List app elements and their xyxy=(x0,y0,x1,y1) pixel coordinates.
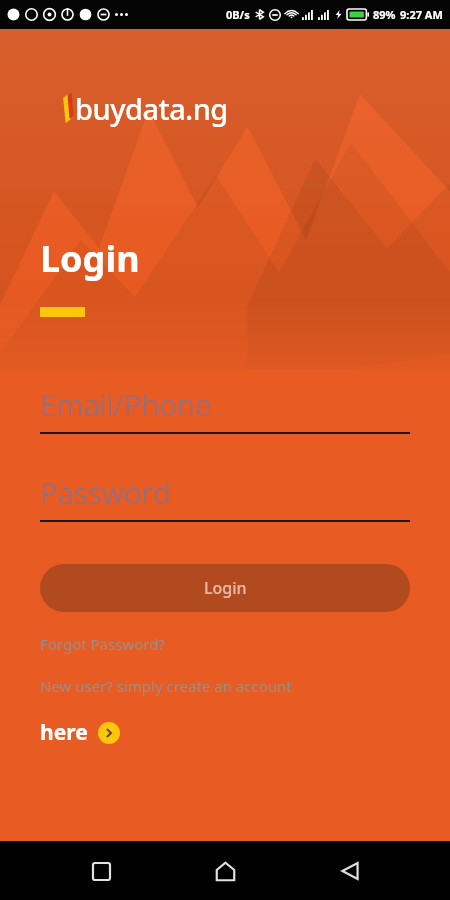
staticText: Email/Phone xyxy=(40,384,212,425)
staticText: New user? simply create an account xyxy=(40,676,292,696)
button[interactable]: Login xyxy=(40,564,410,612)
button[interactable]: Email/Phone xyxy=(40,384,410,434)
button[interactable]: here xyxy=(40,718,120,747)
staticText: here xyxy=(40,718,88,747)
button[interactable]: Home xyxy=(201,847,249,895)
button[interactable]: Password xyxy=(40,472,410,522)
button[interactable]: Back xyxy=(326,847,374,895)
staticText: buydata.ng xyxy=(75,89,228,128)
staticText: Password xyxy=(40,472,171,513)
button[interactable]: Recent apps xyxy=(77,847,125,895)
staticText: Login xyxy=(204,577,247,599)
button[interactable]: Forgot Password? xyxy=(40,634,165,654)
staticText: 0B/s xyxy=(226,7,250,22)
staticText: 9:27 AM xyxy=(400,7,443,22)
staticText: 89% xyxy=(373,7,396,22)
staticText: Forgot Password? xyxy=(40,634,165,654)
other: Create an account xyxy=(98,722,120,744)
staticText: Login xyxy=(40,234,140,283)
